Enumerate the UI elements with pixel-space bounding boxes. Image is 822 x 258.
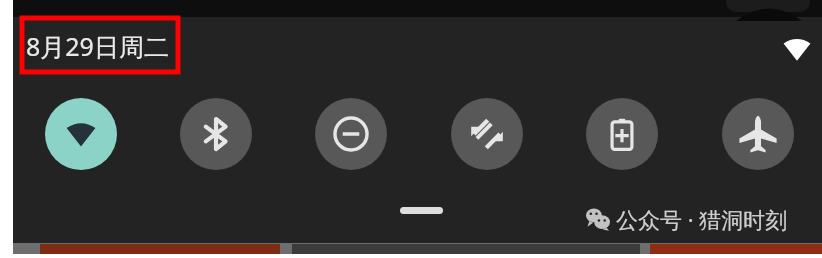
staticText: 公众号 · 猎洞时刻 xyxy=(616,204,788,232)
button[interactable]: 8月29日周二 xyxy=(26,29,176,62)
button[interactable]: Do not disturb xyxy=(315,98,387,170)
staticText: 8月29日周二 xyxy=(26,29,169,62)
button[interactable]: Wi-Fi xyxy=(45,98,117,170)
button[interactable]: Auto rotate xyxy=(451,98,523,170)
button[interactable]: Airplane mode xyxy=(722,98,794,170)
button[interactable]: Bluetooth xyxy=(180,98,252,170)
button[interactable]: Expand quick settings xyxy=(400,207,443,214)
button[interactable]: Battery saver xyxy=(586,98,658,170)
other: Wi-Fi status xyxy=(783,35,811,63)
